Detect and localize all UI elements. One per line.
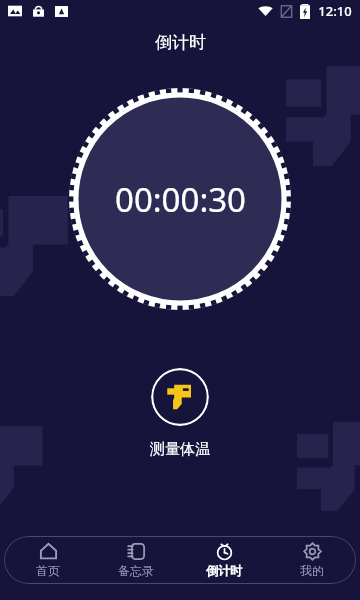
staticText: 测量体温 (150, 440, 210, 459)
button[interactable]: 测量体温 (151, 368, 209, 426)
button[interactable]: 我的 (268, 536, 356, 584)
staticText: 备忘录 (118, 563, 154, 578)
staticText: 我的 (300, 563, 324, 578)
staticText: 倒计时 (155, 32, 206, 53)
staticText: 12:10 (318, 2, 352, 20)
button[interactable]: 备忘录 (92, 536, 180, 584)
staticText: 倒计时 (206, 563, 242, 578)
button[interactable]: 首页 (4, 536, 92, 584)
button[interactable]: 倒计时 (180, 536, 268, 584)
staticText: 首页 (36, 563, 60, 578)
staticText: 00:00:30 (115, 177, 246, 222)
button[interactable]: 00:00:30 (69, 88, 291, 310)
